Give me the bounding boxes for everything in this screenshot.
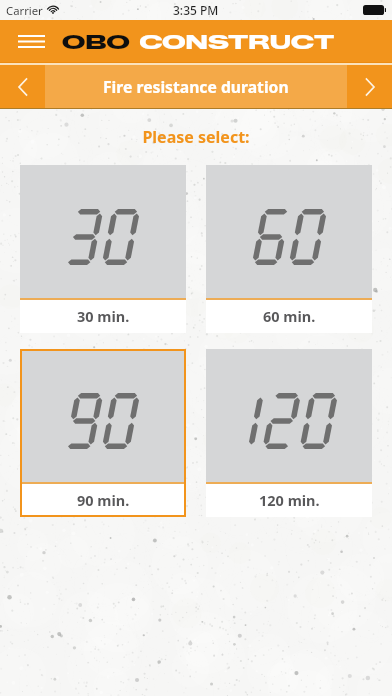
staticText: 120 min. — [259, 490, 320, 510]
button[interactable]: 120 min. — [206, 349, 372, 517]
button[interactable]: 90 min. — [20, 349, 186, 517]
button[interactable]: Fire resistance duration — [45, 65, 347, 108]
button[interactable]: Back — [0, 65, 45, 108]
staticText: 3:35 PM — [173, 2, 219, 18]
button[interactable]: 30 min. — [20, 165, 186, 333]
staticText: 30 min. — [77, 306, 130, 326]
staticText: Fire resistance duration — [103, 76, 289, 97]
staticText: Carrier — [6, 3, 43, 18]
button[interactable]: 60 min. — [206, 165, 372, 333]
staticText: 90 min. — [77, 490, 130, 510]
button[interactable]: Forward — [347, 65, 392, 108]
staticText: OBO — [62, 31, 131, 54]
button[interactable]: Open menu — [9, 20, 53, 62]
staticText: Please select: — [0, 126, 392, 148]
staticText: 60 min. — [263, 306, 316, 326]
staticText: CONSTRUCT — [139, 31, 334, 54]
